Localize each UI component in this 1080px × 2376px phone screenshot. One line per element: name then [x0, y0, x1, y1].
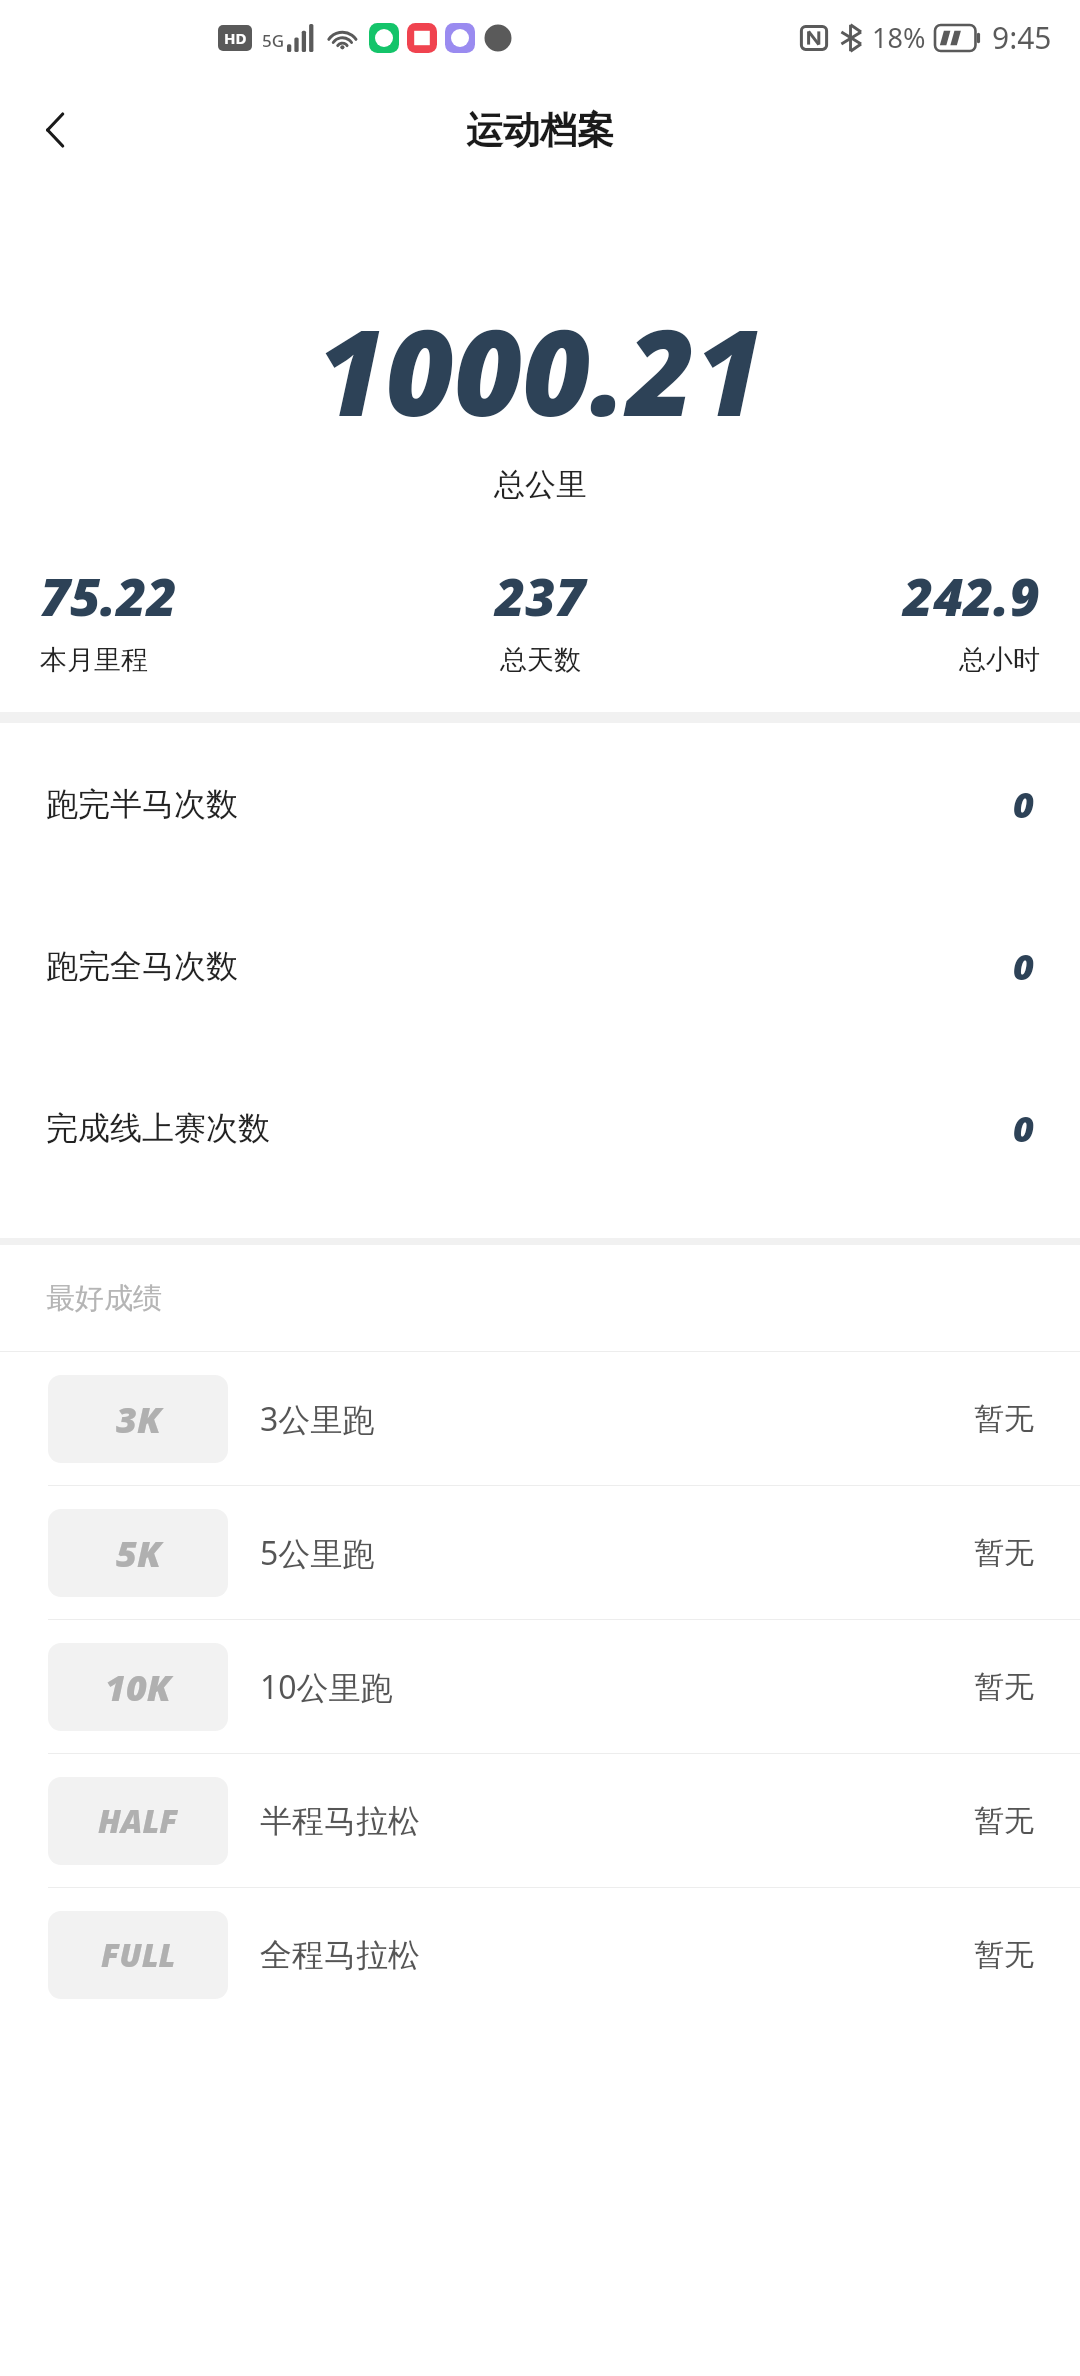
staticText: 暂无 — [974, 1936, 1034, 1974]
button[interactable]: FULL — [0, 1888, 1080, 2021]
button[interactable]: Back — [14, 88, 98, 172]
staticText: 237 — [495, 560, 586, 631]
staticText: 半程马拉松 — [260, 1801, 420, 1841]
staticText: 完成线上赛次数 — [46, 1108, 270, 1148]
button[interactable]: 3K — [0, 1352, 1080, 1485]
button[interactable]: 10K — [0, 1620, 1080, 1753]
staticText: 总小时 — [959, 643, 1040, 677]
staticText: 18% — [872, 19, 926, 56]
staticText: 5G — [262, 29, 285, 52]
staticText: 总公里 — [494, 465, 587, 504]
staticText: 9:45 — [992, 17, 1052, 58]
staticText: 跑完全马次数 — [46, 946, 238, 986]
staticText: 3K — [116, 1395, 161, 1444]
staticText: 总天数 — [500, 643, 581, 677]
staticText: 运动档案 — [466, 107, 614, 154]
staticText: 0 — [1013, 780, 1034, 829]
staticText: 跑完半马次数 — [46, 784, 238, 824]
staticText: 全程马拉松 — [260, 1935, 420, 1975]
button[interactable]: 完成线上赛次数 — [0, 1047, 1080, 1209]
staticText: 5K — [116, 1529, 161, 1578]
staticText: 10公里跑 — [260, 1665, 393, 1709]
button[interactable]: 5K — [0, 1486, 1080, 1619]
staticText: 3公里跑 — [260, 1397, 375, 1441]
staticText: 暂无 — [974, 1534, 1034, 1572]
staticText: 242.9 — [903, 560, 1040, 631]
staticText: 5公里跑 — [260, 1531, 375, 1575]
staticText: 暂无 — [974, 1400, 1034, 1438]
staticText: 暂无 — [974, 1668, 1034, 1706]
staticText: HD — [224, 28, 247, 48]
button[interactable]: 跑完全马次数 — [0, 885, 1080, 1047]
staticText: 0 — [1013, 942, 1034, 991]
staticText: 1000.21 — [317, 290, 764, 451]
staticText: 75.22 — [40, 560, 177, 631]
staticText: 暂无 — [974, 1802, 1034, 1840]
staticText: 本月里程 — [40, 643, 148, 677]
staticText: 最好成绩 — [46, 1280, 162, 1317]
staticText: FULL — [101, 1933, 176, 1977]
button[interactable]: HALF — [0, 1754, 1080, 1887]
staticText: 0 — [1013, 1104, 1034, 1153]
staticText: 10K — [105, 1663, 171, 1712]
button[interactable]: 跑完半马次数 — [0, 723, 1080, 885]
staticText: HALF — [98, 1799, 178, 1843]
